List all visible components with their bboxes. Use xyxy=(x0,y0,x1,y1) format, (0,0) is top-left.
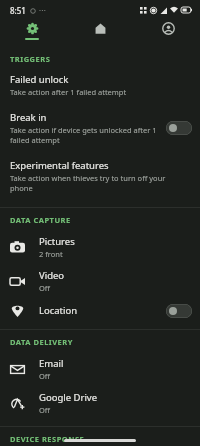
staticText: DATA DELIVERY xyxy=(10,337,73,347)
button[interactable]: Failed unlock xyxy=(0,69,200,101)
staticText: Google Drive xyxy=(39,391,98,404)
button[interactable]: Settings xyxy=(17,20,47,48)
button[interactable]: Pictures xyxy=(0,230,200,264)
button[interactable]: Email xyxy=(0,352,200,386)
staticText: Pictures xyxy=(39,235,75,248)
button[interactable]: Google Drive xyxy=(0,386,200,420)
staticText: 8:51 xyxy=(10,5,26,16)
button[interactable]: Account xyxy=(153,20,183,48)
staticText: Location xyxy=(39,304,78,317)
staticText: Off xyxy=(39,371,51,381)
button[interactable]: Home xyxy=(85,20,115,48)
button[interactable]: Experimental features xyxy=(0,155,200,197)
staticText: Experimental features xyxy=(10,159,109,172)
button[interactable]: Toggle xyxy=(166,121,192,135)
staticText: 2 front xyxy=(39,249,63,259)
staticText: TRIGGERS xyxy=(10,54,51,64)
staticText: Off xyxy=(39,283,51,293)
button[interactable]: Break in xyxy=(0,107,200,149)
button[interactable]: Location xyxy=(0,298,200,323)
staticText: Video xyxy=(39,269,65,282)
staticText: Failed unlock xyxy=(10,73,69,86)
staticText: DATA CAPTURE xyxy=(10,215,71,225)
staticText: Take action if device gets unlocked afte… xyxy=(10,125,160,145)
button[interactable]: Video xyxy=(0,264,200,298)
staticText: Break in xyxy=(10,111,47,124)
staticText: Email xyxy=(39,357,64,370)
staticText: Off xyxy=(39,405,51,415)
staticText: DEVICE RESPONSE xyxy=(10,434,85,444)
staticText: Take action after 1 failed attempt xyxy=(10,87,127,97)
staticText: Take action when thieves try to turn off… xyxy=(10,173,186,193)
button[interactable]: Toggle xyxy=(166,304,192,318)
